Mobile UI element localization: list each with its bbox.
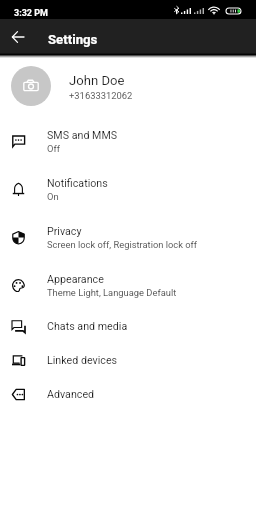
staticText: Settings [48, 32, 98, 47]
button[interactable]: Advanced [0, 377, 256, 411]
button[interactable]: Navigate up [0, 19, 36, 54]
staticText: On [47, 191, 59, 202]
staticText: Privacy [47, 225, 82, 238]
staticText: Chats and media [47, 320, 128, 333]
staticText: Notifications [47, 177, 108, 190]
button[interactable]: Linked devices [0, 343, 256, 377]
button[interactable]: John Doe [0, 54, 256, 117]
button[interactable]: Notifications [0, 165, 256, 213]
staticText: Screen lock off, Registration lock off [47, 239, 198, 250]
staticText: 3:32 PM [14, 8, 48, 19]
staticText: John Doe [69, 73, 125, 88]
staticText: Linked devices [47, 354, 118, 367]
staticText: Advanced [47, 388, 95, 401]
staticText: +31633312062 [69, 90, 133, 101]
staticText: Off [47, 143, 60, 154]
staticText: Appearance [47, 273, 104, 286]
button[interactable]: Appearance [0, 261, 256, 309]
staticText: SMS and MMS [47, 129, 118, 142]
staticText: Theme Light, Language Default [47, 287, 177, 298]
button[interactable]: Chats and media [0, 309, 256, 343]
button[interactable]: SMS and MMS [0, 117, 256, 165]
button[interactable]: Privacy [0, 213, 256, 261]
